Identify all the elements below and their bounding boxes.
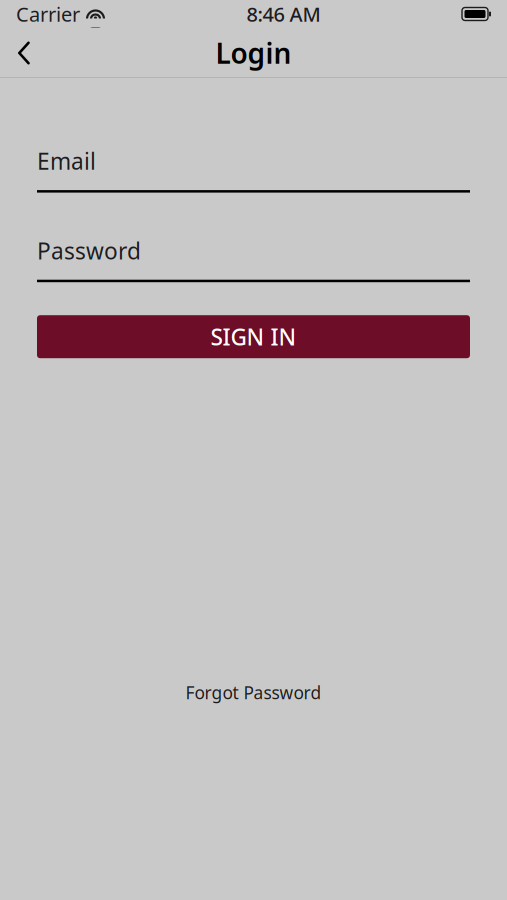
staticText: Carrier <box>16 1 80 27</box>
staticText: 8:46 AM <box>246 1 320 27</box>
button[interactable]: SIGN IN <box>37 315 470 358</box>
button[interactable]: Forgot Password <box>171 673 335 712</box>
staticText: SIGN IN <box>210 322 296 352</box>
staticText: Login <box>215 34 291 72</box>
staticText: Forgot Password <box>185 681 321 704</box>
staticText: Password <box>37 236 141 266</box>
button[interactable]: Back <box>0 29 48 77</box>
staticText: Email <box>37 146 96 176</box>
